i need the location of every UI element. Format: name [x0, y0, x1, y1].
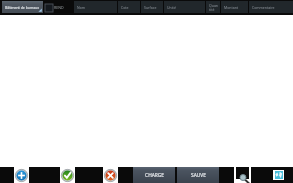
button[interactable]: Bâtiment de bureaux	[2, 1, 43, 13]
staticText: Unité	[167, 5, 176, 10]
button[interactable]: Cancel	[103, 167, 118, 183]
button[interactable]: Unité	[164, 1, 205, 13]
staticText: Cote	[121, 5, 129, 10]
button[interactable]: Toggle	[45, 4, 53, 12]
staticText: REND	[54, 5, 64, 10]
staticText: Surface	[144, 5, 157, 10]
button[interactable]: Add	[14, 167, 29, 183]
staticText: Commentaire	[252, 5, 275, 10]
staticText: SAUVE	[191, 172, 206, 179]
button[interactable]: Search	[234, 167, 251, 183]
staticText: CHARGE	[145, 172, 164, 179]
button[interactable]: Nom	[74, 1, 117, 13]
button[interactable]: Surface	[141, 1, 163, 13]
button[interactable]: Language	[273, 170, 284, 180]
button[interactable]: Validate	[60, 167, 75, 183]
button[interactable]: CHARGE	[133, 167, 175, 183]
button[interactable]: Montant	[221, 1, 248, 13]
staticText: Quantité	[209, 3, 219, 12]
staticText: Montant	[224, 5, 239, 10]
button[interactable]: Commentaire	[249, 1, 293, 13]
staticText: Bâtiment de bureaux	[5, 5, 40, 10]
button[interactable]: SAUVE	[177, 167, 219, 183]
staticText: Nom	[77, 5, 86, 10]
button[interactable]: Cote	[118, 1, 140, 13]
button[interactable]: Quantité	[206, 1, 220, 13]
